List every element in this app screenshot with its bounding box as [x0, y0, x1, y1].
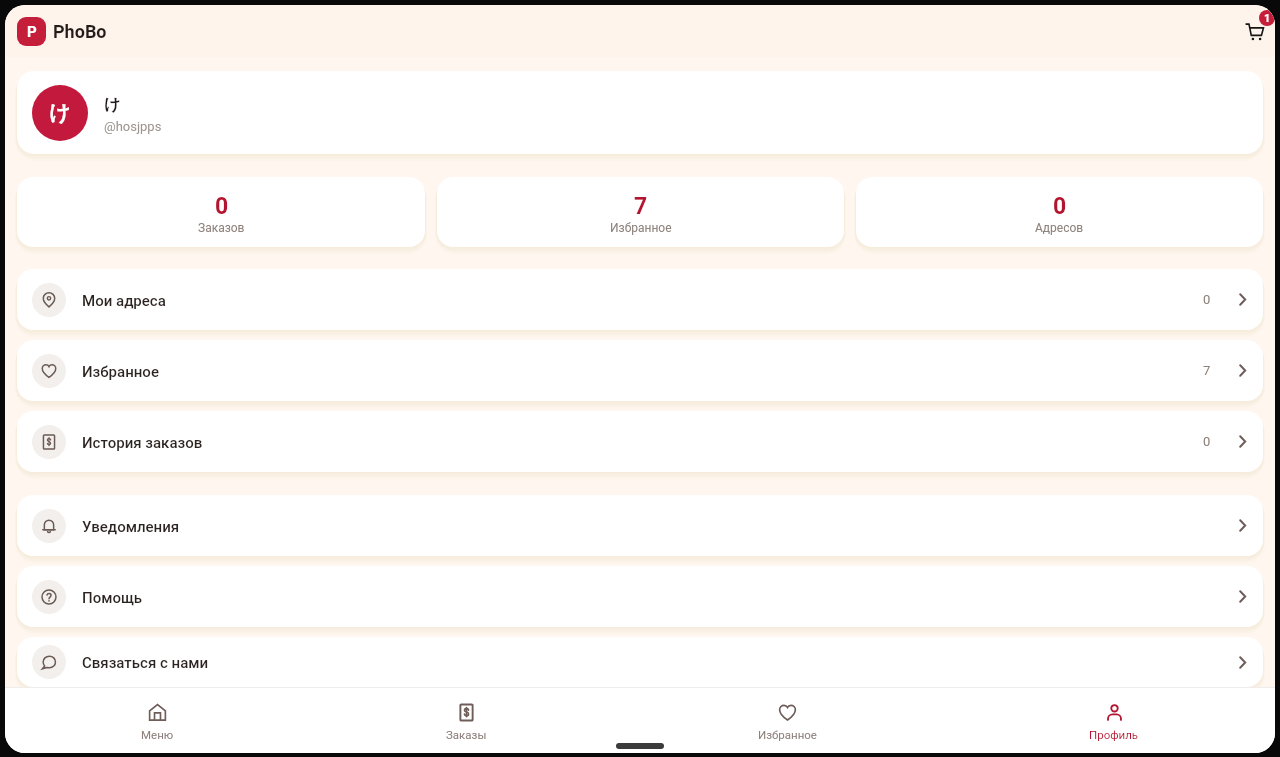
button[interactable]: Профиль	[1089, 700, 1139, 743]
staticText: Связаться с нами	[82, 654, 209, 672]
staticText: 7	[634, 193, 648, 220]
staticText: Адресов	[1035, 221, 1084, 235]
button[interactable]: История заказов	[17, 411, 1263, 472]
button[interactable]: Избранное	[17, 340, 1263, 401]
button[interactable]: Мои адреса	[17, 269, 1263, 330]
button[interactable]: Меню	[141, 700, 174, 743]
button[interactable]: Избранное	[758, 700, 817, 743]
button[interactable]: Cart	[1235, 11, 1275, 51]
button[interactable]: Заказы	[446, 700, 487, 743]
staticText: 0	[1203, 292, 1211, 307]
staticText: Избранное	[82, 363, 159, 381]
staticText: け	[49, 100, 71, 126]
button[interactable]: Уведомления	[17, 495, 1263, 556]
button[interactable]: 0	[17, 177, 425, 247]
staticText: 0	[1053, 193, 1067, 220]
staticText: Помощь	[82, 589, 143, 607]
staticText: P	[27, 23, 37, 41]
staticText: @hosjpps	[104, 119, 162, 134]
staticText: Избранное	[758, 728, 817, 741]
staticText: 7	[1203, 363, 1211, 378]
staticText: Мои адреса	[82, 292, 166, 310]
staticText: PhoBo	[53, 21, 107, 42]
button[interactable]: Связаться с нами	[17, 637, 1263, 687]
staticText: Избранное	[610, 221, 672, 235]
button[interactable]: 0	[856, 177, 1263, 247]
staticText: 1	[1264, 12, 1271, 25]
button[interactable]: Помощь	[17, 566, 1263, 627]
button[interactable]: け	[17, 71, 1263, 154]
staticText: Меню	[141, 728, 174, 741]
button[interactable]: 7	[437, 177, 844, 247]
staticText: Уведомления	[82, 518, 180, 536]
staticText: 0	[1203, 434, 1211, 449]
staticText: け	[104, 95, 121, 115]
staticText: 0	[215, 193, 229, 220]
staticText: Заказы	[446, 728, 487, 741]
staticText: История заказов	[82, 434, 203, 452]
staticText: Заказов	[198, 221, 245, 235]
staticText: Профиль	[1089, 728, 1139, 741]
